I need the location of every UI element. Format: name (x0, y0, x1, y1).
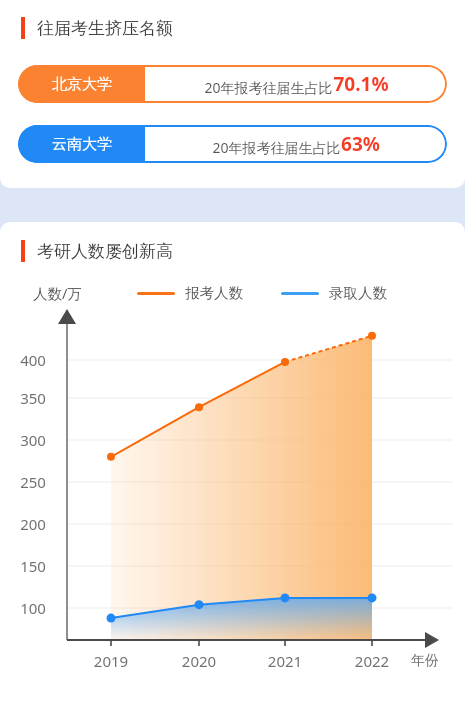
staticText: 100 (10, 598, 56, 618)
staticText: 2021 (260, 651, 310, 671)
button[interactable]: 云南大学 (18, 125, 447, 163)
button[interactable]: 北京大学 (18, 65, 447, 103)
staticText: 2022 (347, 651, 397, 671)
staticText: 年份 (404, 652, 446, 670)
staticText: 北京大学 (52, 75, 112, 94)
staticText: 云南大学 (52, 135, 112, 154)
staticText: 往届考生挤压名额 (37, 18, 173, 39)
staticText: 70.1% (333, 71, 389, 97)
staticText: 300 (10, 430, 56, 450)
staticText: 报考人数 (185, 284, 243, 302)
staticText: 考研人数屡创新高 (37, 241, 173, 262)
staticText: 录取人数 (329, 284, 387, 302)
staticText: 400 (10, 350, 56, 370)
staticText: 250 (10, 472, 56, 492)
staticText: 2019 (86, 651, 136, 671)
staticText: 350 (10, 388, 56, 408)
staticText: 20年报考往届生占比 (204, 78, 333, 97)
staticText: 人数/万 (33, 283, 82, 303)
staticText: 2020 (174, 651, 224, 671)
staticText: 200 (10, 514, 56, 534)
staticText: 150 (10, 556, 56, 576)
staticText: 63% (341, 131, 380, 157)
staticText: 20年报考往届生占比 (212, 138, 341, 157)
